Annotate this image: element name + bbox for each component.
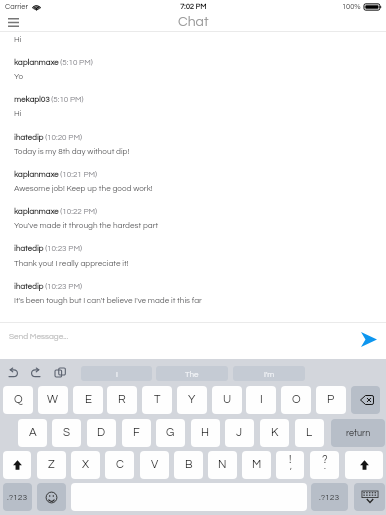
button[interactable]: E — [73, 386, 103, 414]
button[interactable]: I — [246, 386, 276, 414]
staticText: 100% — [342, 3, 361, 11]
button[interactable]: .?123 — [311, 483, 348, 511]
staticText: ihatedip (10:20 PM) — [14, 133, 82, 141]
staticText: ! — [289, 454, 292, 465]
staticText: K — [271, 427, 279, 439]
staticText: Q — [14, 394, 23, 406]
staticText: kaplanmaxe (5:10 PM) — [14, 58, 93, 66]
staticText: mekapl03 (5:10 PM) — [14, 95, 84, 103]
staticText: 7:02 PM — [180, 3, 207, 11]
staticText: Hi — [14, 35, 22, 43]
staticText: return — [346, 429, 371, 438]
staticText: V — [151, 459, 159, 471]
staticText: Today is my 8th day without dip! — [14, 147, 130, 155]
button[interactable]: V — [140, 451, 169, 479]
button[interactable]: B — [174, 451, 203, 479]
staticText: N — [218, 459, 227, 471]
button[interactable]: ! — [276, 451, 304, 479]
staticText: M — [252, 459, 262, 471]
button[interactable]: O — [281, 386, 311, 414]
staticText: ihatedip (10:23 PM) — [14, 282, 82, 290]
button[interactable]: U — [212, 386, 242, 414]
button[interactable]: J — [225, 419, 254, 447]
button[interactable]: S — [52, 419, 81, 447]
button[interactable]: .?123 — [3, 483, 32, 511]
staticText: The — [185, 370, 199, 378]
staticText: kaplanmaxe (10:21 PM) — [14, 170, 98, 178]
staticText: U — [223, 394, 232, 406]
staticText: , — [290, 462, 292, 471]
button[interactable]: Hide keyboard — [354, 483, 385, 511]
button[interactable]: The — [156, 366, 228, 381]
button[interactable]: T — [142, 386, 172, 414]
staticText: C — [116, 459, 124, 471]
button[interactable]: Menu — [3, 12, 23, 32]
staticText: S — [63, 427, 71, 439]
button[interactable]: C — [105, 451, 134, 479]
button[interactable]: Shift — [345, 451, 383, 479]
button[interactable]: A — [18, 419, 47, 447]
button[interactable]: Undo — [5, 366, 20, 379]
button[interactable]: X — [71, 451, 100, 479]
staticText: Carrier — [5, 3, 29, 11]
button[interactable]: P — [316, 386, 346, 414]
staticText: Y — [188, 394, 196, 406]
staticText: A — [29, 427, 37, 439]
staticText: Send Message... — [9, 332, 69, 340]
button[interactable]: F — [122, 419, 151, 447]
staticText: .?123 — [7, 493, 28, 502]
button[interactable]: G — [156, 419, 185, 447]
staticText: W — [47, 394, 59, 406]
button[interactable]: L — [295, 419, 324, 447]
staticText: Thank you! I really appreciate it! — [14, 259, 129, 267]
staticText: I'm — [264, 370, 275, 378]
staticText: J — [236, 427, 243, 439]
button[interactable]: Y — [177, 386, 207, 414]
button[interactable]: Q — [3, 386, 33, 414]
staticText: ihatedip (10:23 PM) — [14, 244, 82, 252]
staticText: H — [201, 427, 210, 439]
button[interactable]: Z — [37, 451, 66, 479]
staticText: It's been tough but I can't believe I've… — [14, 296, 202, 304]
button[interactable]: H — [191, 419, 220, 447]
button[interactable]: N — [208, 451, 237, 479]
button[interactable]: return — [331, 419, 385, 447]
staticText: T — [154, 394, 161, 406]
staticText: Yo — [14, 72, 24, 80]
button[interactable]: M — [242, 451, 271, 479]
staticText: P — [327, 394, 335, 406]
button[interactable]: W — [38, 386, 68, 414]
staticText: You've made it through the hardest part — [14, 221, 159, 229]
button[interactable]: Emoji — [37, 483, 66, 511]
staticText: O — [292, 394, 301, 406]
button[interactable]: Paste — [53, 366, 68, 379]
staticText: E — [85, 394, 92, 406]
staticText: Hi — [14, 109, 22, 117]
staticText: L — [306, 427, 313, 439]
staticText: F — [133, 427, 140, 439]
button[interactable]: Backspace — [351, 386, 380, 414]
staticText: kaplanmaxe (10:22 PM) — [14, 207, 98, 215]
staticText: X — [82, 459, 90, 471]
button[interactable]: Redo — [29, 366, 44, 379]
staticText: G — [166, 427, 175, 439]
staticText: .?123 — [319, 493, 340, 502]
button[interactable]: K — [260, 419, 289, 447]
staticText: ? — [322, 454, 328, 465]
staticText: Awesome job! Keep up the good work! — [14, 184, 153, 192]
button[interactable]: Send — [353, 324, 385, 354]
staticText: I — [116, 370, 118, 378]
button[interactable]: Shift — [3, 451, 31, 479]
button[interactable]: D — [87, 419, 116, 447]
staticText: . — [324, 462, 326, 471]
staticText: D — [97, 427, 106, 439]
button[interactable]: I'm — [233, 366, 305, 381]
staticText: Chat — [178, 15, 209, 29]
staticText: Z — [48, 459, 55, 471]
staticText: I — [260, 394, 263, 406]
button[interactable]: ? — [310, 451, 339, 479]
staticText: R — [118, 394, 126, 406]
button[interactable]: R — [107, 386, 137, 414]
